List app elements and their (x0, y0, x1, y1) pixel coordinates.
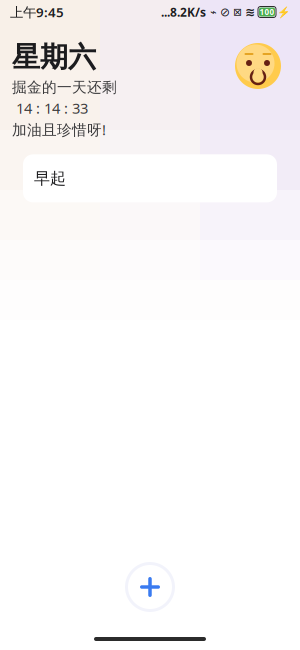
staticText: 加油且珍惜呀! (12, 120, 106, 139)
staticText: 星期六 (12, 40, 96, 74)
staticText: ≋ (245, 5, 255, 19)
button[interactable]: 早起 (23, 154, 277, 202)
staticText: ⊘ (220, 5, 230, 19)
staticText: 掘金的一天还剩 (12, 78, 117, 96)
staticText: 100 (259, 7, 274, 17)
staticText: 早起 (34, 168, 66, 188)
staticText: 14 : 14 : 33 (12, 98, 88, 118)
staticText: ⊠ (230, 6, 245, 18)
button[interactable]: Add task (124, 561, 176, 613)
staticText: ⌁ (206, 6, 220, 18)
staticText: ⚡ (277, 6, 290, 18)
staticText: ...8.2K/s (161, 4, 206, 20)
staticText: 上午9:45 (10, 3, 64, 21)
